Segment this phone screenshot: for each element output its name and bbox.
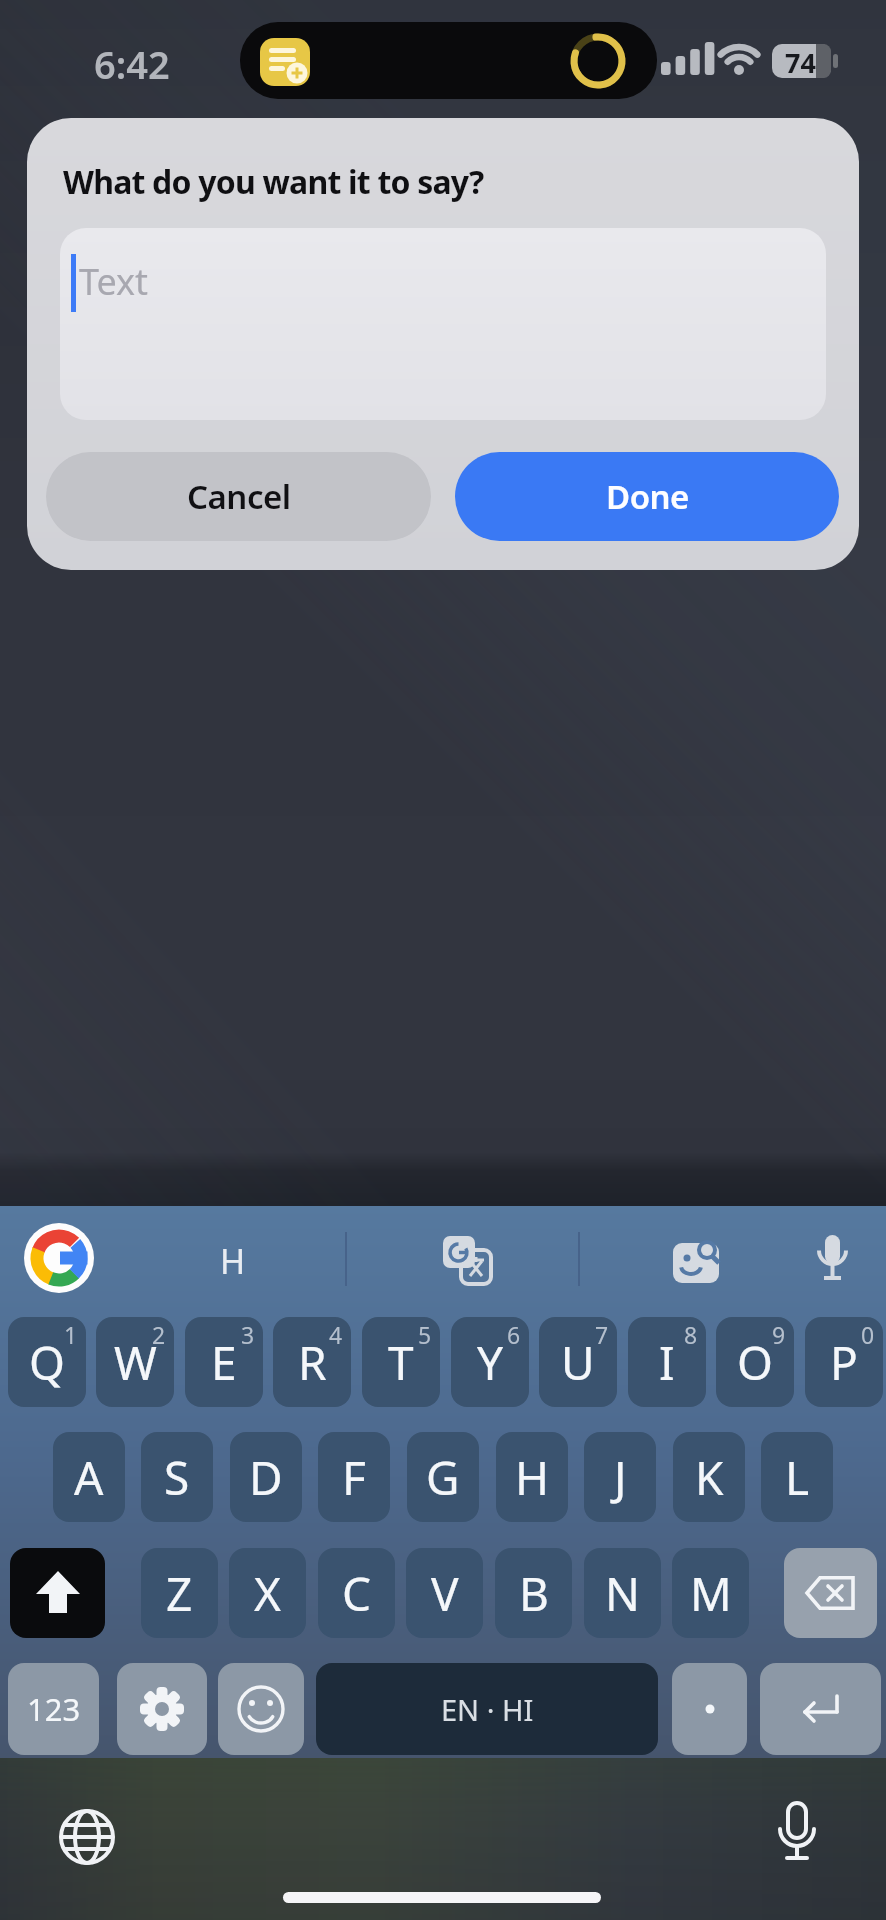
button[interactable]: O xyxy=(716,1317,794,1407)
button[interactable]: W xyxy=(96,1317,174,1407)
staticText: Q xyxy=(29,1331,65,1394)
button[interactable]: K xyxy=(673,1432,745,1522)
button[interactable] xyxy=(760,1663,881,1755)
staticText: V xyxy=(431,1562,459,1625)
button[interactable]: Y xyxy=(451,1317,529,1407)
staticText: 123 xyxy=(27,1688,81,1730)
button[interactable]: P xyxy=(805,1317,883,1407)
button[interactable]: Z xyxy=(141,1548,218,1638)
staticText: I xyxy=(659,1331,675,1394)
staticText: 8 xyxy=(684,1319,698,1350)
staticText: 3 xyxy=(241,1319,255,1350)
staticText: O xyxy=(737,1331,773,1394)
staticText: 6 xyxy=(507,1319,521,1350)
button[interactable]: U xyxy=(539,1317,617,1407)
staticText: G xyxy=(426,1446,460,1509)
button[interactable]: M xyxy=(672,1548,749,1638)
button[interactable] xyxy=(218,1663,304,1755)
staticText: EN · HI xyxy=(441,1690,534,1729)
staticText: M xyxy=(690,1562,732,1625)
staticText: F xyxy=(342,1446,366,1509)
staticText: 9 xyxy=(772,1319,786,1350)
staticText: U xyxy=(561,1331,595,1394)
button[interactable]: I xyxy=(628,1317,706,1407)
staticText: 4 xyxy=(329,1319,343,1350)
staticText: 1 xyxy=(64,1319,78,1350)
staticText: 0 xyxy=(861,1319,875,1350)
button[interactable]: Cancel xyxy=(46,452,431,541)
staticText: 6:42 xyxy=(94,38,170,90)
button[interactable]: R xyxy=(273,1317,351,1407)
button[interactable] xyxy=(672,1663,747,1755)
staticText: 5 xyxy=(418,1319,432,1350)
button[interactable]: Done xyxy=(455,452,839,541)
button[interactable]: S xyxy=(141,1432,213,1522)
staticText: L xyxy=(785,1446,810,1509)
staticText: B xyxy=(519,1562,549,1625)
staticText: Text xyxy=(79,257,149,306)
button[interactable]: EN · HI xyxy=(316,1663,658,1755)
button[interactable]: V xyxy=(406,1548,483,1638)
button[interactable]: L xyxy=(761,1432,833,1522)
staticText: K xyxy=(695,1446,724,1509)
staticText: J xyxy=(614,1446,627,1509)
button[interactable]: 123 xyxy=(8,1663,99,1755)
button[interactable]: D xyxy=(230,1432,302,1522)
button[interactable]: X xyxy=(229,1548,306,1638)
staticText: W xyxy=(114,1331,157,1394)
staticText: Done xyxy=(606,474,689,519)
staticText: 7 xyxy=(595,1319,609,1350)
staticText: P xyxy=(830,1331,858,1394)
staticText: 2 xyxy=(152,1319,166,1350)
staticText: 74 xyxy=(785,44,816,81)
staticText: R xyxy=(298,1331,327,1394)
button[interactable]: F xyxy=(318,1432,390,1522)
staticText: D xyxy=(249,1446,283,1509)
staticText: A xyxy=(74,1446,104,1509)
button[interactable]: G xyxy=(407,1432,479,1522)
button[interactable]: A xyxy=(53,1432,125,1522)
button[interactable]: Text xyxy=(60,228,826,420)
button[interactable] xyxy=(784,1548,877,1638)
button[interactable]: J xyxy=(584,1432,656,1522)
staticText: What do you want it to say? xyxy=(63,160,484,204)
staticText: T xyxy=(388,1331,414,1394)
staticText: H xyxy=(515,1446,550,1509)
staticText: Z xyxy=(166,1562,193,1625)
button[interactable]: E xyxy=(185,1317,263,1407)
staticText: C xyxy=(342,1562,372,1625)
button[interactable]: H xyxy=(496,1432,568,1522)
staticText: H xyxy=(220,1238,246,1284)
staticText: Y xyxy=(477,1331,504,1394)
staticText: S xyxy=(164,1446,190,1509)
button[interactable]: Q xyxy=(8,1317,86,1407)
staticText: Cancel xyxy=(187,474,291,519)
button[interactable]: T xyxy=(362,1317,440,1407)
button[interactable]: C xyxy=(318,1548,395,1638)
button[interactable]: N xyxy=(584,1548,661,1638)
button[interactable] xyxy=(117,1663,207,1755)
staticText: E xyxy=(211,1331,237,1394)
button[interactable]: B xyxy=(495,1548,572,1638)
staticText: N xyxy=(605,1562,640,1625)
staticText: X xyxy=(254,1562,281,1625)
button[interactable] xyxy=(10,1548,105,1638)
